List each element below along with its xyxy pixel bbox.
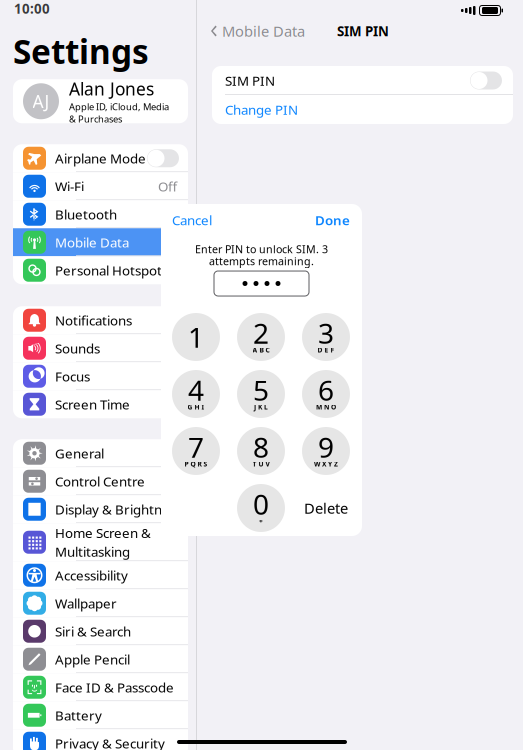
button[interactable]: Cancel [172, 207, 228, 233]
button[interactable]: Bluetooth [13, 200, 188, 228]
staticText: A B C [252, 346, 269, 354]
button[interactable]: 3 [302, 313, 350, 361]
staticText: Cancel [172, 211, 212, 229]
staticText: D E F [317, 346, 334, 354]
staticText: Mobile Data [222, 21, 305, 41]
staticText: Apple Pencil [55, 650, 130, 668]
staticText: Alan Jones [69, 77, 154, 100]
staticText: 0 [253, 485, 269, 523]
staticText: Personal Hotspot [55, 261, 162, 279]
button[interactable]: Apple Pencil [13, 645, 188, 673]
staticText: 9 [318, 428, 334, 466]
staticText: 2 [253, 314, 269, 352]
staticText: SIM PIN [225, 72, 275, 89]
staticText: Multitasking [55, 543, 130, 560]
staticText: T U V [252, 460, 269, 468]
button[interactable]: Mobile Data [211, 18, 305, 44]
button[interactable]: Control Centre [13, 467, 188, 495]
staticText: Enter PIN to unlock SIM. 3 [195, 242, 328, 256]
button[interactable]: 8 [237, 427, 285, 475]
staticText: Delete [304, 498, 348, 518]
button[interactable]: 2 [237, 313, 285, 361]
button[interactable]: 6 [302, 370, 350, 418]
staticText: Airplane Mode [55, 149, 146, 167]
button[interactable]: Sounds [13, 334, 188, 362]
staticText: SIM PIN [337, 22, 389, 40]
button[interactable]: Home Screen & [13, 523, 188, 561]
staticText: Display & Brightness [55, 500, 182, 518]
staticText: + [259, 517, 263, 525]
staticText: Wi-Fi [55, 177, 84, 195]
button[interactable]: Done [294, 207, 350, 233]
button[interactable]: Face ID & Passcode [13, 673, 188, 701]
staticText: 7 [188, 428, 204, 466]
button[interactable]: Delete [302, 484, 350, 532]
staticText: Control Centre [55, 472, 145, 490]
staticText: Wallpaper [55, 594, 117, 612]
button[interactable]: Wallpaper [13, 589, 188, 617]
button[interactable]: 9 [302, 427, 350, 475]
button[interactable]: 7 [172, 427, 220, 475]
staticText: General [55, 444, 104, 462]
staticText: Change PIN [225, 101, 298, 118]
staticText: Battery [55, 706, 102, 724]
button[interactable]: Siri & Search [13, 617, 188, 645]
staticText: 6 [318, 371, 334, 409]
staticText: Home Screen & [55, 524, 151, 542]
button[interactable]: 5 [237, 370, 285, 418]
button[interactable]: Accessibility [13, 561, 188, 589]
button[interactable]: 4 [172, 370, 220, 418]
staticText: Siri & Search [55, 622, 131, 640]
staticText: Mobile Data [55, 233, 129, 251]
staticText: Off [158, 177, 177, 195]
staticText: Done [315, 211, 350, 229]
staticText: Bluetooth [55, 205, 117, 223]
staticText: 5 [253, 371, 269, 409]
staticText: Apple ID, iCloud, Media [69, 100, 169, 113]
staticText: Settings [13, 29, 149, 73]
staticText: Screen Time [55, 395, 130, 413]
staticText: J K L [254, 403, 268, 411]
button[interactable]: Display & Brightness [13, 495, 188, 523]
staticText: 10:00 [14, 0, 50, 17]
staticText: M N O [316, 403, 336, 411]
button[interactable]: Airplane Mode [13, 144, 188, 172]
staticText: 1 [188, 318, 204, 356]
button[interactable]: Notifications [13, 306, 188, 334]
button[interactable]: 1 [172, 313, 220, 361]
staticText: Privacy & Security [55, 734, 165, 750]
staticText: Focus [55, 367, 90, 385]
button[interactable]: AJ [13, 79, 188, 123]
staticText: Notifications [55, 311, 132, 329]
staticText: & Purchases [69, 113, 122, 125]
staticText: 3 [318, 314, 334, 352]
button[interactable]: SIM PIN [212, 66, 513, 95]
button[interactable]: 0 [237, 484, 285, 532]
button[interactable]: Screen Time [13, 390, 188, 418]
staticText: G H I [187, 403, 204, 411]
staticText: AJ [32, 90, 49, 113]
staticText: attempts remaining. [209, 254, 314, 268]
button[interactable]: Focus [13, 362, 188, 390]
button[interactable]: Personal Hotspot [13, 256, 188, 284]
staticText: W X Y Z [314, 460, 338, 468]
staticText: 8 [253, 428, 269, 466]
staticText: Face ID & Passcode [55, 678, 174, 696]
button[interactable]: Change PIN [212, 95, 513, 124]
staticText: Sounds [55, 339, 100, 357]
button[interactable]: Privacy & Security [13, 729, 188, 750]
staticText: Accessibility [55, 566, 128, 584]
button[interactable]: General [13, 439, 188, 467]
button[interactable]: Battery [13, 701, 188, 729]
staticText: 4 [188, 371, 204, 409]
button[interactable]: Wi-Fi [13, 172, 188, 200]
button[interactable]: Mobile Data [13, 228, 188, 256]
staticText: P Q R S [184, 460, 207, 468]
